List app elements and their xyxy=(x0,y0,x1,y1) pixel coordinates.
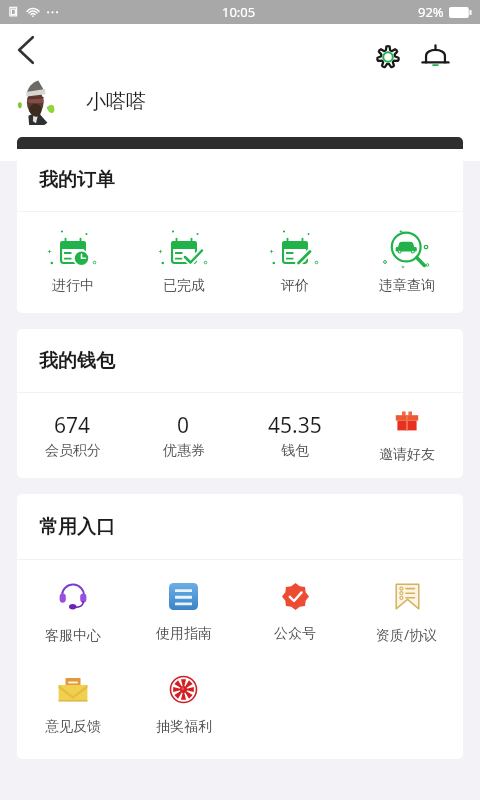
button[interactable]: 资质/协议 xyxy=(351,583,463,644)
button[interactable]: Settings xyxy=(369,41,407,73)
staticText: 优惠券 xyxy=(163,442,205,460)
button[interactable]: 45.35 xyxy=(239,411,351,460)
button[interactable]: 违章查询 xyxy=(351,230,463,295)
staticText: 公众号 xyxy=(274,625,316,643)
staticText: 小嗒嗒 xyxy=(86,89,146,114)
staticText: 客服中心 xyxy=(45,627,101,645)
button[interactable]: 评价 xyxy=(239,230,351,295)
staticText: 进行中 xyxy=(52,277,94,295)
staticText: 意见反馈 xyxy=(45,718,101,736)
staticText: 资质/协议 xyxy=(376,625,438,644)
button[interactable]: 抽奖福利 xyxy=(128,676,239,736)
button[interactable]: 公众号 xyxy=(239,583,351,643)
staticText: 我的钱包 xyxy=(39,349,115,373)
staticText: 使用指南 xyxy=(156,625,212,643)
staticText: 674 xyxy=(54,411,91,440)
staticText: 10:05 xyxy=(222,3,256,21)
button[interactable]: Back xyxy=(6,34,46,66)
staticText: 我的订单 xyxy=(39,168,115,192)
staticText: 92% xyxy=(418,3,444,21)
button[interactable]: 进行中 xyxy=(17,230,128,295)
button[interactable] xyxy=(17,137,463,149)
staticText: 邀请好友 xyxy=(379,446,435,464)
button[interactable]: 邀请好友 xyxy=(351,411,463,464)
staticText: 违章查询 xyxy=(379,277,435,295)
staticText: 钱包 xyxy=(281,442,309,460)
button[interactable]: 已完成 xyxy=(128,230,239,295)
staticText: 45.35 xyxy=(268,411,322,440)
staticText: 抽奖福利 xyxy=(156,718,212,736)
button[interactable]: Notifications xyxy=(416,39,454,71)
button[interactable]: 意见反馈 xyxy=(17,676,128,736)
staticText: 已完成 xyxy=(163,277,205,295)
button[interactable]: 0 xyxy=(128,411,239,460)
button[interactable]: 客服中心 xyxy=(17,583,128,645)
button[interactable]: 674 xyxy=(17,411,128,460)
staticText: 会员积分 xyxy=(45,442,101,460)
staticText: 0 xyxy=(177,411,190,440)
button[interactable]: 使用指南 xyxy=(128,583,239,643)
staticText: 评价 xyxy=(281,277,309,295)
staticText: 常用入口 xyxy=(39,515,115,539)
